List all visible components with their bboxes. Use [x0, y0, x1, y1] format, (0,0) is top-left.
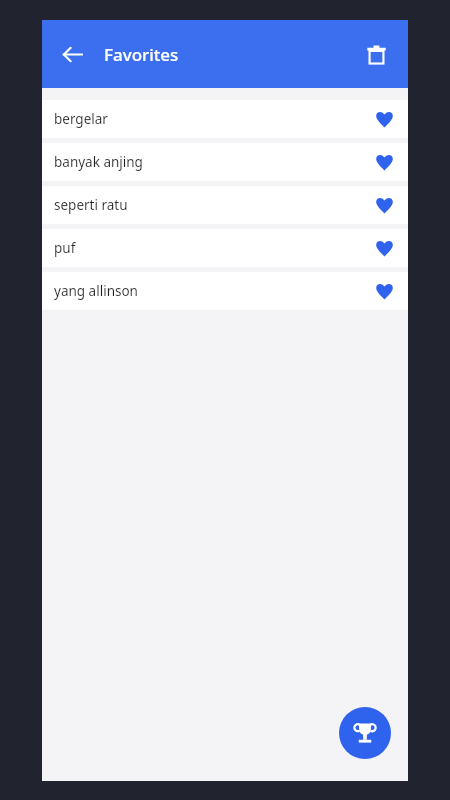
- button[interactable]: banyak anjing: [42, 143, 408, 181]
- staticText: bergelar: [54, 110, 108, 128]
- staticText: yang allinson: [54, 282, 138, 300]
- button[interactable]: yang allinson: [42, 272, 408, 310]
- button[interactable]: seperti ratu: [42, 186, 408, 224]
- button[interactable]: Remove from favorites: [370, 148, 398, 176]
- button[interactable]: Leaderboard: [339, 707, 391, 759]
- button[interactable]: bergelar: [42, 100, 408, 138]
- staticText: seperti ratu: [54, 196, 128, 214]
- staticText: Favorites: [104, 43, 179, 66]
- button[interactable]: Remove from favorites: [370, 234, 398, 262]
- button[interactable]: puf: [42, 229, 408, 267]
- button[interactable]: Remove from favorites: [370, 105, 398, 133]
- button[interactable]: Remove from favorites: [370, 191, 398, 219]
- staticText: banyak anjing: [54, 153, 143, 171]
- button[interactable]: Remove from favorites: [370, 277, 398, 305]
- button[interactable]: Delete all favorites: [355, 33, 397, 75]
- staticText: puf: [54, 239, 76, 257]
- button[interactable]: Back: [51, 33, 93, 75]
